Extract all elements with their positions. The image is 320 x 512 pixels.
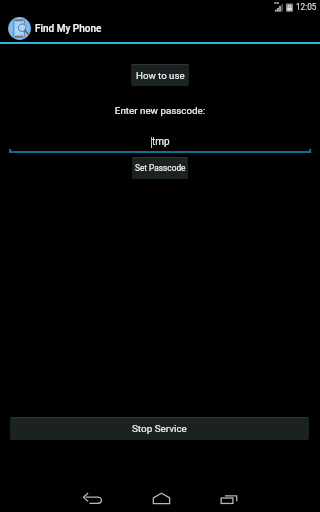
- button[interactable]: Back: [58, 468, 127, 512]
- button[interactable]: How to use: [131, 64, 189, 86]
- button[interactable]: Set Passcode: [132, 157, 188, 179]
- staticText: 12:05: [296, 2, 317, 12]
- staticText: Set Passcode: [135, 163, 186, 173]
- staticText: Enter new passcode:: [0, 105, 320, 116]
- button[interactable]: Recent apps: [195, 468, 263, 512]
- staticText: tmp: [152, 136, 170, 148]
- button[interactable]: Home: [127, 468, 195, 512]
- staticText: Find My Phone: [35, 23, 102, 35]
- staticText: Stop Service: [132, 423, 187, 435]
- staticText: How to use: [136, 70, 185, 81]
- button[interactable]: Stop Service: [10, 417, 309, 440]
